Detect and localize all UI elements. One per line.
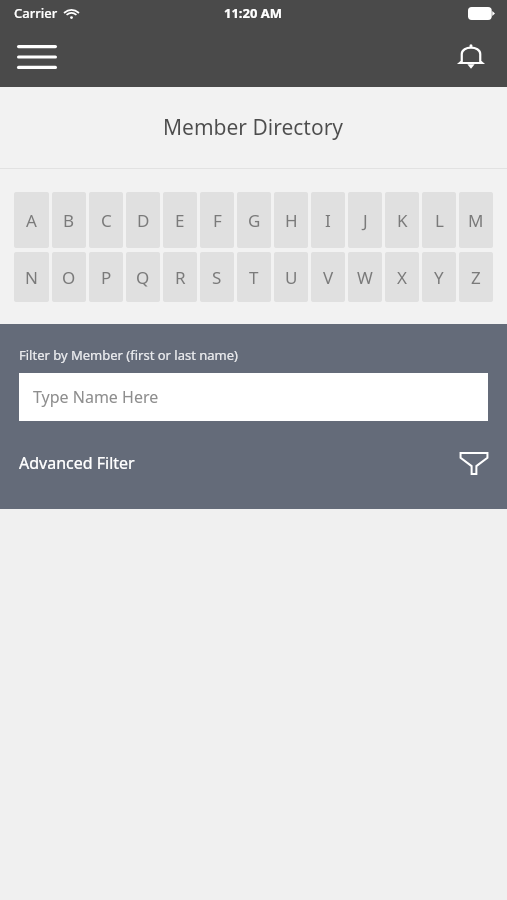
button[interactable]: M xyxy=(459,192,493,248)
staticText: G xyxy=(248,209,261,232)
staticText: T xyxy=(249,266,259,289)
staticText: Q xyxy=(136,266,150,289)
button[interactable]: G xyxy=(237,192,271,248)
button[interactable]: Type Name Here xyxy=(19,373,488,421)
button[interactable]: Menu xyxy=(8,32,66,82)
button[interactable]: C xyxy=(89,192,123,248)
button[interactable]: W xyxy=(348,252,382,302)
staticText: Z xyxy=(471,266,481,289)
button[interactable]: X xyxy=(385,252,419,302)
button[interactable]: H xyxy=(274,192,308,248)
button[interactable]: S xyxy=(200,252,234,302)
button[interactable]: Notifications xyxy=(445,31,497,83)
staticText: F xyxy=(213,209,222,232)
staticText: Member Directory xyxy=(163,113,344,142)
staticText: C xyxy=(101,209,112,232)
staticText: B xyxy=(63,209,75,232)
button[interactable]: V xyxy=(311,252,345,302)
button[interactable]: K xyxy=(385,192,419,248)
staticText: Filter by Member (first or last name) xyxy=(19,346,238,364)
button[interactable]: Advanced Filter xyxy=(0,431,507,495)
staticText: J xyxy=(363,209,368,232)
staticText: V xyxy=(323,266,334,289)
button[interactable]: Y xyxy=(422,252,456,302)
staticText: D xyxy=(137,209,150,232)
button[interactable]: B xyxy=(52,192,86,248)
staticText: Y xyxy=(434,266,444,289)
staticText: X xyxy=(397,266,407,289)
button[interactable]: R xyxy=(163,252,197,302)
staticText: M xyxy=(468,209,484,232)
button[interactable]: I xyxy=(311,192,345,248)
staticText: A xyxy=(26,209,37,232)
staticText: I xyxy=(325,209,331,232)
staticText: 11:20 AM xyxy=(224,4,283,22)
button[interactable]: P xyxy=(89,252,123,302)
button[interactable]: F xyxy=(200,192,234,248)
staticText: H xyxy=(285,209,298,232)
button[interactable]: O xyxy=(52,252,86,302)
staticText: W xyxy=(357,266,373,289)
staticText: U xyxy=(285,266,298,289)
staticText: L xyxy=(435,209,444,232)
staticText: O xyxy=(62,266,76,289)
staticText: P xyxy=(101,266,112,289)
button[interactable]: U xyxy=(274,252,308,302)
staticText: K xyxy=(397,209,408,232)
staticText: S xyxy=(212,266,222,289)
button[interactable]: Q xyxy=(126,252,160,302)
staticText: R xyxy=(175,266,186,289)
staticText: E xyxy=(175,209,185,232)
staticText: Type Name Here xyxy=(33,386,159,408)
button[interactable]: L xyxy=(422,192,456,248)
button[interactable]: D xyxy=(126,192,160,248)
staticText: Carrier xyxy=(14,4,58,22)
button[interactable]: Z xyxy=(459,252,493,302)
staticText: N xyxy=(25,266,38,289)
button[interactable]: J xyxy=(348,192,382,248)
button[interactable]: E xyxy=(163,192,197,248)
button[interactable]: N xyxy=(14,252,49,302)
button[interactable]: T xyxy=(237,252,271,302)
button[interactable]: A xyxy=(14,192,49,248)
staticText: Advanced Filter xyxy=(19,452,135,474)
